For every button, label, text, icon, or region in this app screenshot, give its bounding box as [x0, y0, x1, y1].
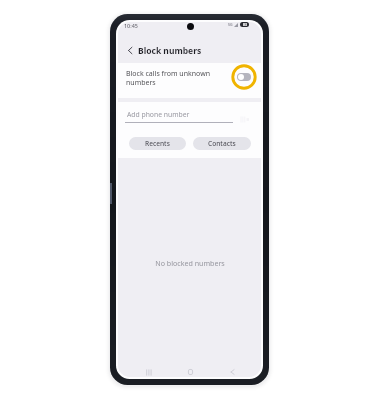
staticText: Add phone number — [127, 110, 190, 119]
button[interactable]: Back — [223, 363, 241, 379]
button[interactable]: Home — [181, 363, 199, 379]
button[interactable]: Navigate up — [123, 43, 137, 57]
staticText: Contacts — [208, 139, 236, 148]
staticText: 5G — [228, 22, 233, 27]
staticText: 10:45 — [124, 22, 138, 29]
staticText: No blocked numbers — [155, 258, 225, 268]
button[interactable]: Block calls from unknown numbers toggle — [237, 73, 251, 81]
button[interactable]: Recents — [129, 137, 186, 150]
staticText: Recents — [145, 139, 170, 148]
button[interactable]: Recent apps — [139, 363, 157, 379]
button[interactable]: Block calls from unknown numbers — [116, 63, 263, 98]
staticText: Block numbers — [138, 45, 202, 57]
staticText: Block calls from unknown numbers — [126, 69, 210, 87]
staticText: 83 — [243, 22, 247, 27]
button[interactable]: Contacts — [193, 137, 251, 150]
